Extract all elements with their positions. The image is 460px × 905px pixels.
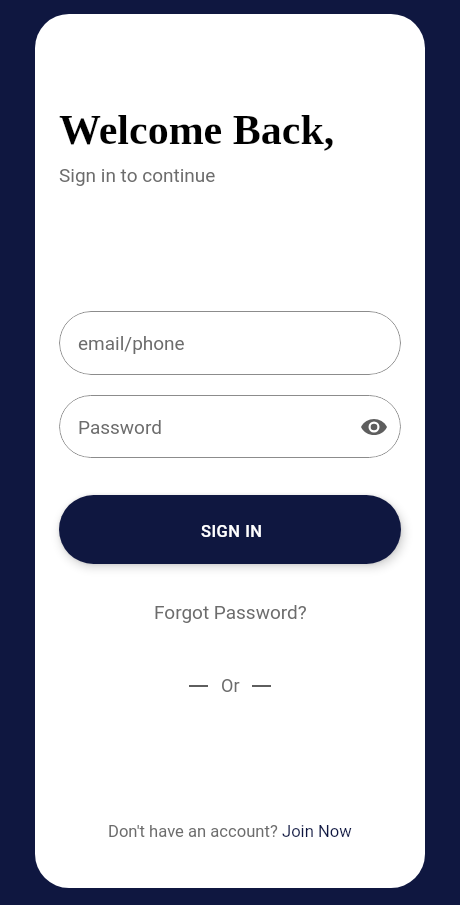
button[interactable]: Forgot Password? (59, 601, 401, 623)
button[interactable]: Join Now (282, 822, 352, 841)
button[interactable]: email/phone input field (59, 311, 401, 375)
staticText: Forgot Password? (154, 601, 307, 623)
button[interactable]: Password input field (59, 395, 401, 458)
staticText: Join Now (282, 822, 352, 841)
staticText: email/phone (78, 332, 185, 354)
button[interactable]: Show password (359, 412, 389, 442)
staticText: SIGN IN (201, 522, 263, 541)
staticText: Welcome Back, (59, 107, 335, 154)
button[interactable]: SIGN IN (59, 495, 401, 564)
staticText: Sign in to continue (59, 164, 216, 186)
staticText: Password (78, 416, 162, 438)
staticText: Don't have an account? (108, 822, 278, 841)
staticText: Or (221, 675, 240, 696)
